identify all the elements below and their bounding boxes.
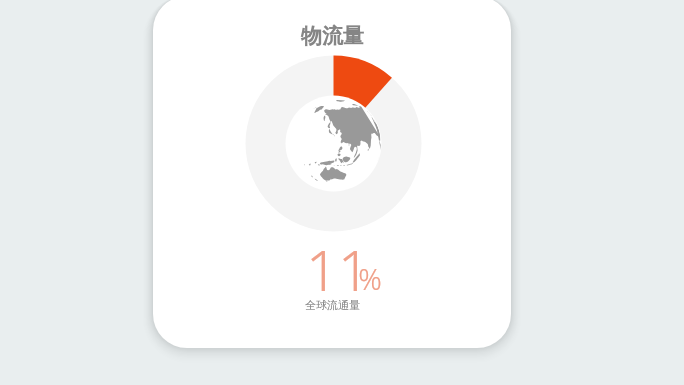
staticText: 11 <box>306 231 370 307</box>
button[interactable]: Global logistics share 11 percent <box>153 0 511 348</box>
other: Global logistics share 11 percent <box>153 0 511 348</box>
staticText: 物流量 <box>301 23 364 49</box>
staticText: 全球流通量 <box>305 298 360 312</box>
staticText: % <box>358 259 382 298</box>
